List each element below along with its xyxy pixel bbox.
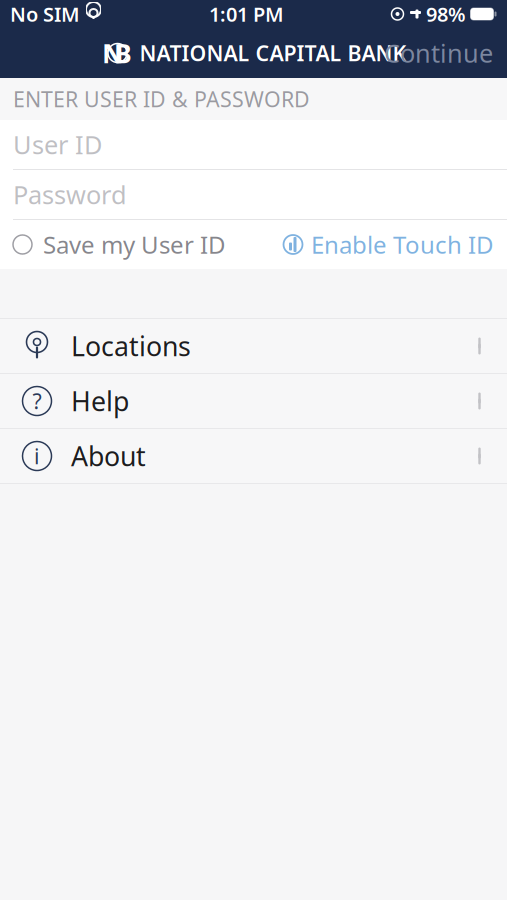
staticText: Password [13,178,127,211]
button[interactable]: Locations [0,319,507,374]
staticText: ENTER USER ID & PASSWORD [13,85,310,113]
staticText: Save my User ID [43,229,226,260]
staticText: B [114,35,132,71]
staticText: 98% [426,1,466,27]
button[interactable]: Enable Touch ID [282,217,494,272]
staticText: User ID [13,128,102,161]
staticText: Enable Touch ID [311,229,494,260]
staticText: No SIM [10,1,80,27]
staticText: N [102,35,124,71]
staticText: Locations [71,328,191,364]
button[interactable]: Save my User ID [13,217,226,272]
staticText: ? [32,387,41,415]
staticText: NATIONAL CAPITAL BANK [139,39,406,67]
staticText: Help [71,383,129,419]
button[interactable]: ? [0,374,507,429]
staticText: i [34,442,40,470]
button[interactable]: Continue [370,26,507,80]
button[interactable]: i [0,429,507,484]
staticText: About [71,438,146,474]
staticText: Continue [384,36,493,70]
staticText: 1:01 PM [209,1,284,27]
